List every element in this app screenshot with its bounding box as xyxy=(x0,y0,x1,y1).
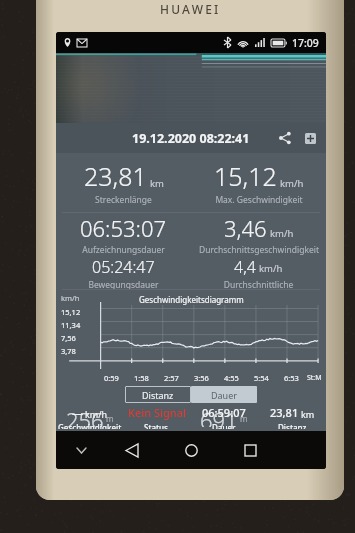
staticText: 2:57 xyxy=(164,373,179,383)
staticText: Geschwindigkeit xyxy=(58,422,122,429)
staticText: 3,46 xyxy=(224,213,267,243)
staticText: m xyxy=(106,413,114,424)
staticText: 691 xyxy=(200,405,238,427)
button[interactable]: 4,4 xyxy=(191,256,326,289)
staticText: Distanz xyxy=(278,422,307,429)
staticText: km/h xyxy=(270,227,294,240)
staticText: Durchschnittsgeschwindigkeit xyxy=(199,244,319,256)
staticText: Geschwindigkeitsdiagramm xyxy=(139,294,244,305)
button[interactable]: Hide xyxy=(70,439,92,461)
staticText: Max. Geschwindigkeit xyxy=(215,194,303,206)
button[interactable]: Dauer xyxy=(191,386,257,403)
staticText: 15,12 xyxy=(214,159,277,193)
staticText: 06:59:07 xyxy=(202,405,246,420)
button[interactable]: 06:59:07 xyxy=(190,405,258,429)
staticText: 23,81 xyxy=(270,405,299,420)
staticText: 4,4 xyxy=(234,256,256,278)
staticText: Dauer xyxy=(212,422,236,429)
staticText: 3:56 xyxy=(194,373,209,383)
staticText: Distanz xyxy=(142,389,174,401)
staticText: km/h xyxy=(61,293,80,303)
staticText: 5:54 xyxy=(254,373,269,383)
staticText: 19.12.2020 08:22:41 xyxy=(132,130,250,147)
staticText: m xyxy=(240,413,248,424)
button[interactable]: — xyxy=(56,405,123,429)
staticText: Durchschnittliche Bewegungsgeschwin... xyxy=(191,279,326,289)
staticText: km xyxy=(301,408,315,420)
staticText: km xyxy=(150,177,164,190)
button[interactable]: Distanz xyxy=(125,386,191,403)
button[interactable]: Back xyxy=(115,433,149,467)
staticText: 17:09 xyxy=(292,36,319,50)
staticText: 256 xyxy=(66,405,104,427)
staticText: 7,56 xyxy=(61,333,76,343)
staticText: 1:58 xyxy=(134,373,149,383)
staticText: 05:24:47 xyxy=(92,256,155,278)
staticText: Dauer xyxy=(211,389,237,401)
staticText: 06:53:07 xyxy=(80,213,167,243)
staticText: km/h xyxy=(280,177,304,190)
staticText: 23,81 xyxy=(84,159,147,193)
staticText: St:M xyxy=(307,373,322,383)
staticText: 11,34 xyxy=(61,320,81,330)
button[interactable]: Save xyxy=(298,126,322,150)
button[interactable]: Home xyxy=(174,433,208,467)
button[interactable]: 23,81 xyxy=(56,153,191,212)
staticText: — xyxy=(72,405,83,420)
button[interactable]: 06:53:07 xyxy=(56,213,191,256)
staticText: 3,78 xyxy=(61,346,76,356)
staticText: Streckenlänge xyxy=(95,194,152,206)
staticText: km/h xyxy=(259,262,283,275)
button[interactable]: 15,12 xyxy=(191,153,326,212)
staticText: 6:53 xyxy=(284,373,299,383)
button[interactable]: Share xyxy=(272,125,298,151)
button[interactable]: Recents xyxy=(233,433,267,467)
staticText: Status xyxy=(144,422,169,429)
staticText: 0:59 xyxy=(104,373,119,383)
button[interactable]: 3,46 xyxy=(191,213,326,256)
button[interactable]: 05:24:47 xyxy=(56,256,191,289)
staticText: 15,12 xyxy=(61,307,81,317)
staticText: Bewegungsdauer xyxy=(88,279,159,289)
button[interactable]: 23,81 xyxy=(258,405,326,429)
button[interactable]: Kein Signal xyxy=(123,405,190,429)
staticText: 4:55 xyxy=(224,373,239,383)
staticText: km/h xyxy=(85,408,108,420)
staticText: HUAWEI xyxy=(160,1,221,17)
staticText: Kein Signal xyxy=(128,405,186,420)
staticText: Aufzeichnungsdauer xyxy=(82,244,165,256)
